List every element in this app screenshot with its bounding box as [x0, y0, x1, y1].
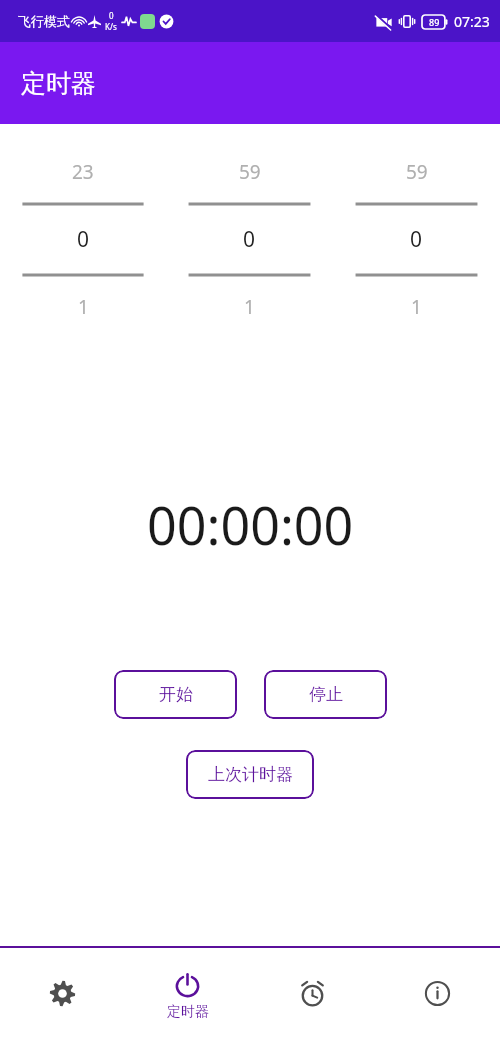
staticText: 00:00:00: [147, 489, 354, 560]
button[interactable]: 59: [166, 142, 333, 337]
button[interactable]: 定时器: [125, 966, 250, 1021]
button[interactable]: 开始: [114, 670, 237, 719]
staticText: 1: [244, 294, 255, 320]
button[interactable]: 23: [0, 142, 166, 337]
staticText: 飞行模式: [18, 13, 70, 29]
staticText: 0: [109, 10, 114, 21]
staticText: 59: [239, 159, 261, 185]
staticText: 停止: [309, 684, 343, 705]
button[interactable]: 停止: [264, 670, 387, 719]
staticText: 59: [406, 159, 428, 185]
staticText: 1: [411, 294, 422, 320]
staticText: 定时器: [21, 68, 96, 99]
staticText: 89: [429, 16, 440, 28]
staticText: 0: [410, 225, 423, 254]
staticText: 1: [78, 294, 89, 320]
button[interactable]: Settings: [0, 980, 125, 1007]
staticText: 0: [243, 225, 256, 254]
staticText: 定时器: [167, 1003, 209, 1021]
staticText: 0: [77, 225, 90, 254]
staticText: 开始: [159, 684, 193, 705]
button[interactable]: 上次计时器: [186, 750, 314, 799]
staticText: 23: [72, 159, 94, 185]
staticText: 上次计时器: [208, 764, 293, 785]
button[interactable]: Alarm: [250, 980, 375, 1007]
staticText: K/s: [105, 21, 117, 32]
staticText: 07:23: [454, 12, 490, 31]
button[interactable]: About: [375, 980, 500, 1007]
button[interactable]: 59: [333, 142, 500, 337]
